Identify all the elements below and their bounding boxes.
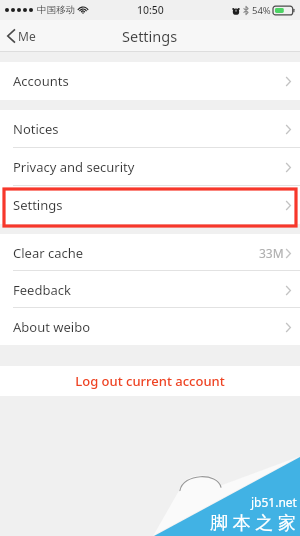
- other: Highlighted Settings row: [4, 189, 296, 226]
- button[interactable]: Log out current account: [0, 366, 300, 396]
- staticText: 10:50: [137, 3, 164, 17]
- staticText: Privacy and security: [13, 158, 135, 176]
- staticText: Me: [18, 28, 36, 44]
- staticText: Settings: [122, 26, 178, 46]
- staticText: Feedback: [13, 281, 71, 299]
- staticText: Accounts: [13, 72, 69, 90]
- staticText: Log out current account: [75, 372, 225, 390]
- staticText: Clear cache: [13, 244, 84, 262]
- staticText: 54%: [252, 4, 271, 17]
- button[interactable]: Notices: [0, 110, 300, 148]
- button[interactable]: Clear cache: [0, 234, 300, 271]
- button[interactable]: About weibo: [0, 308, 300, 345]
- staticText: Settings: [13, 196, 63, 214]
- button[interactable]: Privacy and security: [0, 148, 300, 186]
- staticText: jb51.net: [251, 494, 297, 510]
- button[interactable]: Back to Me: [0, 20, 48, 52]
- staticText: 中国移动: [37, 4, 75, 16]
- staticText: Notices: [13, 120, 59, 138]
- staticText: 33M: [259, 245, 284, 261]
- button[interactable]: Settings: [0, 186, 300, 224]
- button[interactable]: Accounts: [0, 62, 300, 100]
- staticText: About weibo: [13, 318, 91, 336]
- button[interactable]: Feedback: [0, 271, 300, 308]
- staticText: 脚 本 之 家: [210, 510, 297, 535]
